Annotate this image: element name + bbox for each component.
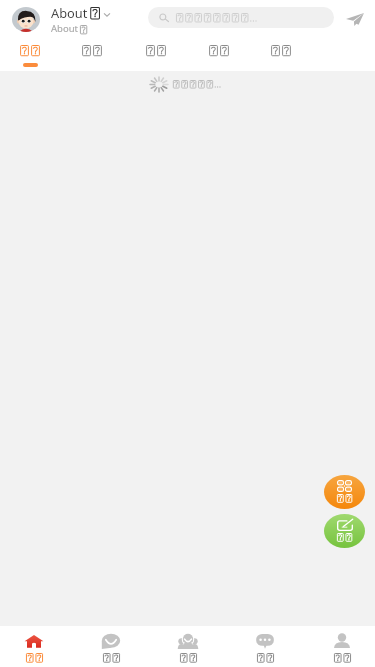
button[interactable]: Groups [154,626,222,667]
button[interactable] [148,7,334,28]
button[interactable]: Home [0,626,68,667]
button[interactable]: Apps [324,475,365,509]
button[interactable]: Chats [231,626,299,667]
button[interactable]: Messages [77,626,145,667]
button[interactable]: Profile [12,7,40,32]
button[interactable]: Compose [324,514,365,548]
button[interactable] [134,38,178,71]
button[interactable]: Send [344,10,366,29]
button[interactable]: Profile [308,626,375,667]
button[interactable] [197,38,241,71]
button[interactable]: About [51,4,110,35]
button[interactable] [8,38,52,71]
staticText: About [51,22,78,35]
staticText: About [51,4,88,21]
button[interactable] [70,38,114,71]
button[interactable] [259,38,303,71]
